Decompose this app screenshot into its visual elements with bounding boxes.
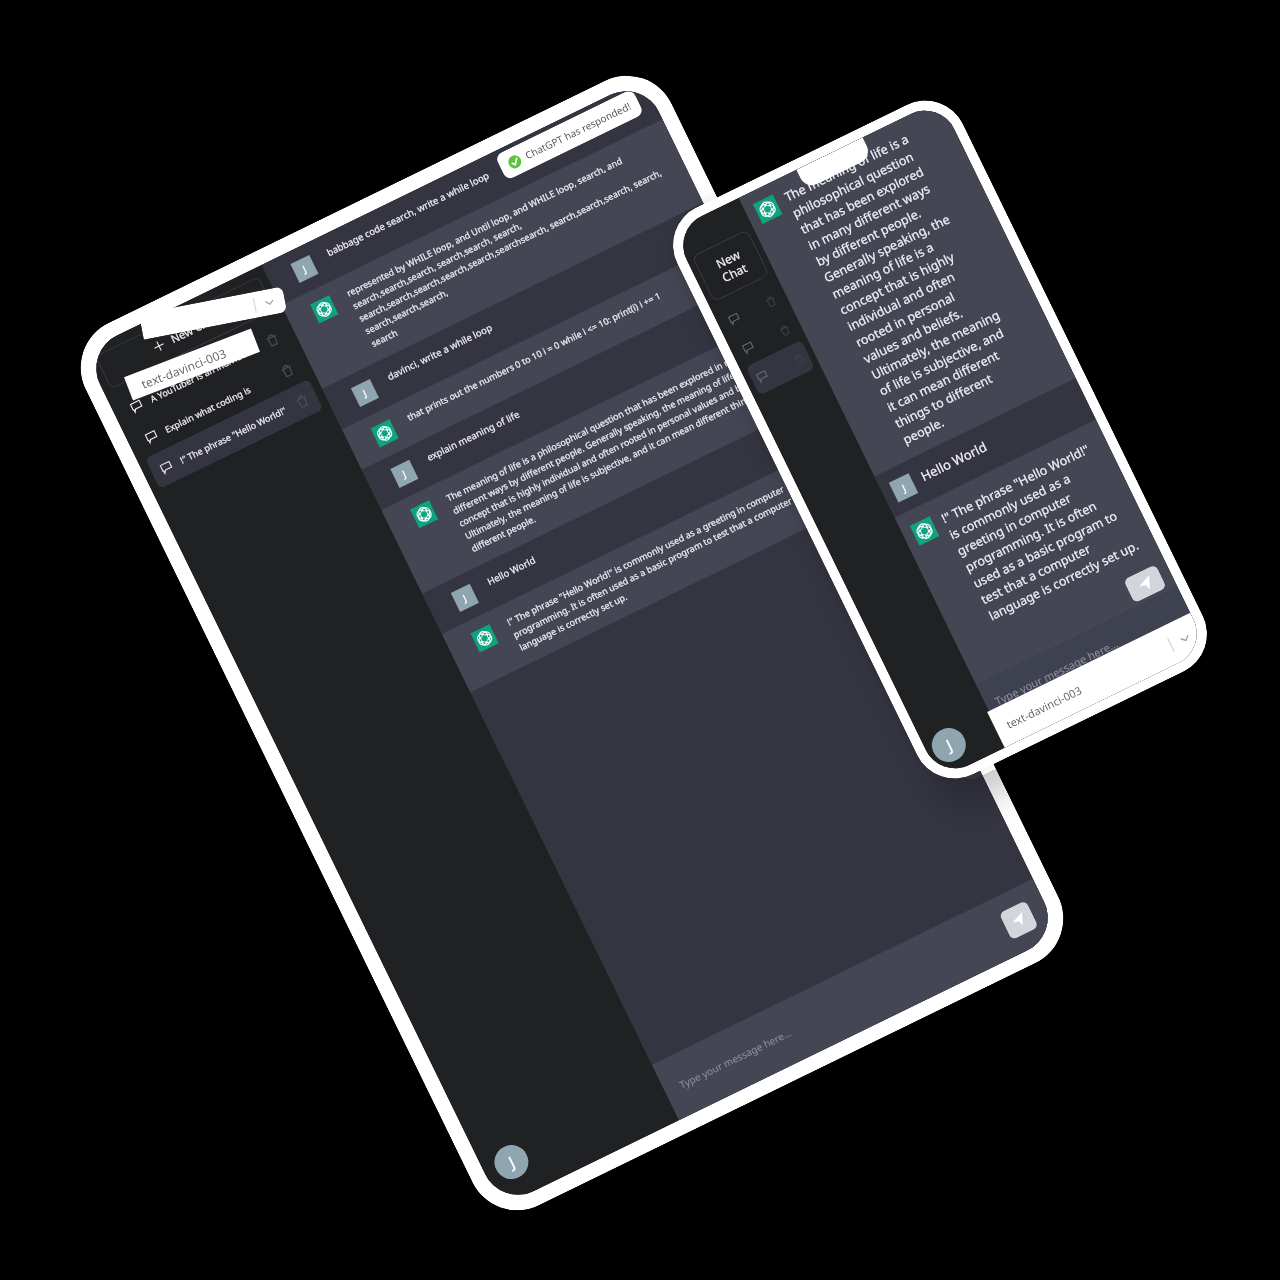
- button[interactable]: !" The phrase "Hello World!" is c: [145, 379, 323, 489]
- staticText: represented by WHILE loop, and Until loo…: [344, 136, 685, 350]
- button[interactable]: A YouTuber is an individual who c: [115, 318, 294, 428]
- button[interactable]: Model selector: [139, 286, 287, 340]
- button[interactable]: ChatGPT has responded!: [494, 89, 644, 181]
- staticText: !" The phrase "Hello World!" is commonly…: [939, 438, 1144, 623]
- staticText: J: [400, 467, 409, 480]
- staticText: babbage code search, write a while loop: [325, 96, 641, 259]
- button[interactable]: [717, 282, 787, 338]
- staticText: J: [300, 262, 309, 275]
- staticText: explain meaning of life: [424, 301, 741, 464]
- staticText: The meaning of life is a philosophical q…: [444, 341, 785, 555]
- button[interactable]: Send: [999, 900, 1039, 940]
- staticText: New Chat: [168, 311, 220, 346]
- staticText: davinci, write a while loop: [385, 220, 702, 383]
- staticText: Hello World: [485, 425, 802, 588]
- button[interactable]: text-davinci-003: [124, 328, 260, 401]
- staticText: Explain what coding is: [163, 369, 280, 435]
- staticText: A YouTuber is an individual who c: [148, 339, 265, 404]
- staticText: text-davinci-003: [139, 345, 229, 392]
- button[interactable]: [745, 340, 815, 396]
- button[interactable]: Explain what coding is: [130, 348, 308, 458]
- button[interactable]: Send: [1123, 564, 1167, 603]
- staticText: J: [942, 734, 956, 756]
- staticText: Type your message here...: [677, 1025, 793, 1092]
- staticText: !" The phrase "Hello World!" is commonly…: [505, 465, 834, 654]
- button[interactable]: Profile: [926, 722, 972, 768]
- staticText: !" The phrase "Hello World!" is c: [178, 400, 295, 466]
- button[interactable]: Profile: [489, 1139, 534, 1185]
- button[interactable]: text-davinci-003: [987, 613, 1208, 748]
- button[interactable]: New Chat: [95, 276, 275, 389]
- staticText: ChatGPT has responded!: [523, 99, 633, 162]
- staticText: The meaning of life is a philosophical q…: [782, 126, 1038, 447]
- staticText: J: [900, 481, 908, 495]
- button[interactable]: [731, 311, 801, 367]
- staticText: text-davinci-003: [1004, 682, 1084, 732]
- staticText: New Chat: [712, 246, 750, 285]
- staticText: Hello World: [918, 393, 1080, 485]
- staticText: J: [505, 1151, 519, 1173]
- staticText: J: [361, 386, 369, 399]
- staticText: J: [461, 591, 469, 604]
- staticText: Type your message here...: [992, 635, 1121, 708]
- staticText: that prints out the numbers 0 to 10 i = …: [405, 260, 721, 423]
- button[interactable]: New Chat: [692, 229, 770, 302]
